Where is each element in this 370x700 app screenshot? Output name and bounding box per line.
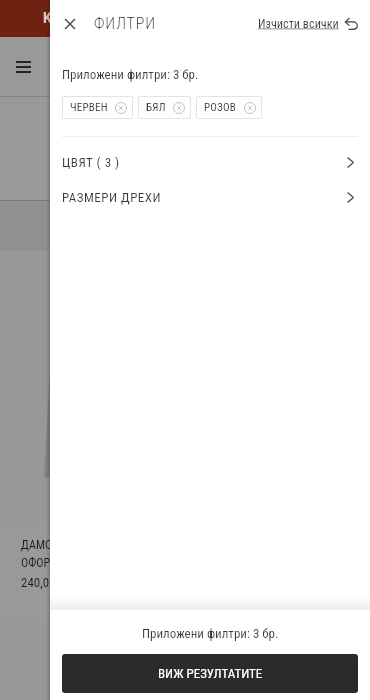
button[interactable]: ЦВЯТ ( 3 ) [50,145,370,180]
staticText: ЧЕРВЕН [70,101,108,114]
button[interactable]: Изчисти всички [250,11,370,37]
staticText: РОЗОВ [204,101,237,114]
button[interactable]: РАЗМЕРИ ДРЕХИ [50,180,370,215]
staticText: ФИЛТРИ [94,14,157,33]
staticText: РАЗМЕРИ ДРЕХИ [62,190,162,205]
other: Menu [16,60,31,73]
button[interactable]: Close [53,7,87,41]
staticText: Изчисти всички [258,17,339,31]
staticText: 240,00 лв. [21,575,76,590]
staticText: KAUFLAND [43,10,115,26]
button[interactable]: ЧЕРВЕН [62,96,133,119]
staticText: ЦВЯТ ( 3 ) [62,155,120,170]
staticText: Приложени филтри: 3 бр. [62,67,199,82]
staticText: БЯЛ [146,101,166,114]
staticText: ВИЖ РЕЗУЛТАТИТЕ [158,666,263,681]
staticText: ДАМСКА РОКЛЯ ОФОРМЕНА ТАЛИЯ [21,538,117,570]
staticText: Приложени филтри: 3 бр. [142,626,279,641]
button[interactable]: БЯЛ [138,96,191,119]
button[interactable]: ВИЖ РЕЗУЛТАТИТЕ [62,654,358,693]
button[interactable]: РОЗОВ [196,96,262,119]
